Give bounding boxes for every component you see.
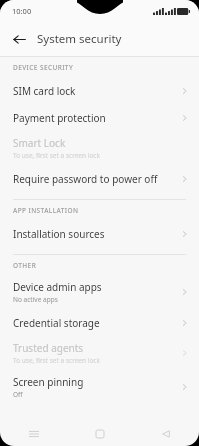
staticText: 10:00 — [12, 6, 32, 16]
staticText: Screen pinning — [13, 375, 84, 389]
staticText: APP INSTALLATION — [13, 206, 79, 215]
staticText: Payment protection — [13, 111, 106, 125]
staticText: Smart Lock — [13, 136, 66, 150]
button[interactable]: Require password to power off — [0, 165, 199, 192]
button[interactable]: SIM card lock — [0, 77, 199, 104]
button[interactable]: Screen pinning — [0, 370, 199, 404]
button[interactable]: Credential storage — [0, 309, 199, 336]
staticText: Credential storage — [13, 316, 100, 330]
button[interactable]: Payment protection — [0, 104, 199, 131]
staticText: Installation sources — [13, 227, 105, 241]
button[interactable]: Device admin apps — [0, 275, 199, 309]
button[interactable]: Home — [67, 422, 133, 446]
button[interactable]: Smart Lock — [0, 131, 199, 165]
staticText: OTHER — [13, 261, 37, 270]
button[interactable]: Recents — [0, 422, 67, 446]
button[interactable]: Trusted agents — [0, 336, 199, 370]
staticText: DEVICE SECURITY — [13, 63, 74, 72]
staticText: No active apps — [13, 295, 58, 304]
button[interactable]: Back — [6, 26, 32, 52]
staticText: Trusted agents — [13, 341, 84, 355]
staticText: System security — [37, 31, 122, 47]
staticText: Device admin apps — [13, 280, 102, 294]
staticText: Off — [13, 390, 23, 399]
button[interactable]: Installation sources — [0, 220, 199, 247]
staticText: Require password to power off — [13, 172, 158, 186]
button[interactable]: Back — [133, 422, 199, 446]
staticText: To use, first set a screen lock — [13, 356, 100, 365]
staticText: SIM card lock — [13, 84, 76, 98]
staticText: To use, first set a screen lock — [13, 151, 100, 160]
